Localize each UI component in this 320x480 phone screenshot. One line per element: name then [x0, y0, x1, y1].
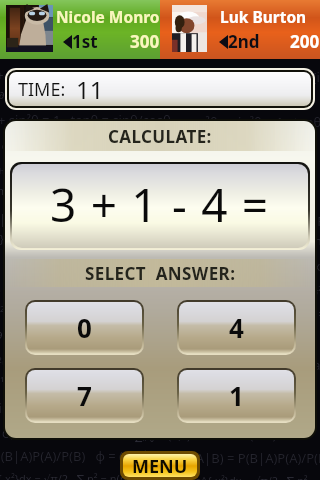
staticText: Nicole Monro: [56, 6, 160, 27]
staticText: 4: [229, 310, 244, 345]
staticText: CALCULATE:: [108, 125, 212, 148]
button[interactable]: 1: [179, 370, 294, 421]
staticText: TIME:: [18, 77, 66, 102]
button[interactable]: 3 + 1 - 4 =: [12, 164, 308, 248]
staticText: 3 + 1 - 4 =: [50, 173, 270, 236]
staticText: 11: [76, 73, 104, 106]
staticText: 7: [77, 378, 92, 413]
staticText: 200: [290, 30, 320, 53]
button[interactable]: 7: [27, 370, 142, 421]
staticText: 300: [130, 30, 160, 53]
staticText: MENU: [132, 454, 188, 477]
button[interactable]: Luk Burton: [160, 0, 320, 59]
staticText: Luk Burton: [220, 6, 307, 27]
button[interactable]: 0: [27, 302, 142, 353]
button[interactable]: MENU: [123, 454, 197, 477]
button[interactable]: 4: [179, 302, 294, 353]
staticText: 1st: [72, 30, 98, 53]
staticText: 0: [77, 310, 92, 345]
button[interactable]: Nicole Monro: [0, 0, 160, 59]
button[interactable]: TIME:: [9, 72, 311, 106]
staticText: 2nd: [228, 30, 260, 53]
staticText: 1: [229, 378, 244, 413]
staticText: SELECT ANSWER:: [85, 262, 236, 285]
